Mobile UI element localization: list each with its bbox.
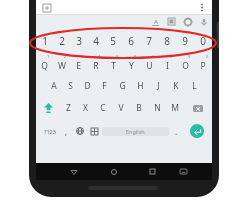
- staticText: 9: [182, 34, 188, 48]
- button[interactable]: 0: [194, 53, 212, 75]
- staticText: 3: [81, 54, 84, 59]
- button[interactable]: Stickers: [167, 17, 176, 26]
- button[interactable]: ?123: [39, 119, 60, 143]
- staticText: K: [173, 80, 179, 92]
- button[interactable]: Hide keyboard: [172, 163, 194, 180]
- staticText: J: [157, 80, 160, 92]
- button[interactable]: English: [102, 127, 169, 136]
- button[interactable]: 2: [53, 53, 70, 75]
- staticText: 2: [64, 54, 67, 59]
- staticText: ?123: [44, 128, 56, 135]
- button[interactable]: K: [167, 75, 185, 97]
- staticText: G: [119, 80, 126, 92]
- staticText: 6: [134, 54, 137, 59]
- button[interactable]: Change language: [72, 119, 87, 143]
- button[interactable]: 5: [104, 28, 122, 53]
- staticText: S: [68, 80, 73, 92]
- button[interactable]: 9: [176, 53, 194, 75]
- staticText: 4: [93, 34, 99, 48]
- button[interactable]: Enter: [190, 124, 204, 138]
- staticText: A: [51, 80, 57, 92]
- button[interactable]: M: [166, 97, 184, 119]
- staticText: X: [83, 102, 88, 114]
- button[interactable]: X: [77, 97, 94, 119]
- staticText: 6: [128, 34, 134, 48]
- button[interactable]: B: [130, 97, 148, 119]
- button[interactable]: Voice input: [199, 17, 208, 26]
- button[interactable]: 6: [122, 53, 140, 75]
- button[interactable]: Shift: [36, 97, 60, 119]
- button[interactable]: Home: [94, 163, 133, 180]
- staticText: B: [136, 102, 142, 114]
- button[interactable]: 3: [70, 53, 87, 75]
- staticText: A: [154, 18, 158, 26]
- button[interactable]: G: [113, 75, 131, 97]
- button[interactable]: N: [148, 97, 166, 119]
- button[interactable]: Translate: [151, 17, 160, 26]
- staticText: 0: [200, 34, 206, 48]
- staticText: 3: [76, 34, 82, 48]
- staticText: V: [118, 102, 124, 114]
- button[interactable]: Recents: [133, 163, 172, 180]
- button[interactable]: 8: [158, 53, 176, 75]
- button[interactable]: 0: [194, 28, 212, 53]
- staticText: Q: [41, 60, 48, 72]
- button[interactable]: Add: [41, 2, 52, 13]
- staticText: 9: [188, 54, 191, 59]
- button[interactable]: A: [45, 75, 62, 97]
- button[interactable]: J: [149, 75, 167, 97]
- staticText: 5: [110, 34, 116, 48]
- button[interactable]: More options: [196, 2, 207, 13]
- button[interactable]: Emoji: [87, 119, 102, 143]
- staticText: R: [93, 60, 99, 72]
- staticText: D: [84, 80, 91, 92]
- staticText: 2: [59, 34, 65, 48]
- staticText: Z: [66, 102, 71, 114]
- button[interactable]: 4: [87, 53, 104, 75]
- button[interactable]: V: [112, 97, 130, 119]
- staticText: ,: [65, 126, 68, 137]
- button[interactable]: 4: [87, 28, 104, 53]
- staticText: 1: [47, 54, 50, 59]
- button[interactable]: Z: [60, 97, 77, 119]
- button[interactable]: C: [94, 97, 112, 119]
- staticText: 0: [206, 54, 209, 59]
- staticText: P: [200, 60, 206, 72]
- staticText: 8: [170, 54, 173, 59]
- staticText: I: [166, 60, 169, 72]
- button[interactable]: 3: [70, 28, 87, 53]
- button[interactable]: 7: [140, 53, 158, 75]
- staticText: O: [182, 60, 189, 72]
- staticText: M: [171, 102, 179, 114]
- button[interactable]: .: [169, 119, 184, 143]
- button[interactable]: H: [131, 75, 149, 97]
- button[interactable]: 7: [140, 28, 158, 53]
- staticText: W: [58, 60, 66, 72]
- button[interactable]: 6: [122, 28, 140, 53]
- button[interactable]: ,: [60, 119, 72, 143]
- button[interactable]: F: [96, 75, 113, 97]
- button[interactable]: Back: [54, 163, 94, 180]
- staticText: English: [126, 128, 145, 135]
- staticText: Y: [129, 60, 134, 72]
- button[interactable]: 2: [53, 28, 70, 53]
- staticText: .: [175, 126, 178, 137]
- button[interactable]: 9: [176, 28, 194, 53]
- staticText: H: [137, 80, 144, 92]
- button[interactable]: Backspace: [184, 97, 212, 119]
- staticText: C: [100, 102, 106, 114]
- staticText: L: [192, 80, 197, 92]
- button[interactable]: Settings: [183, 17, 192, 26]
- button[interactable]: 1: [36, 28, 53, 53]
- button[interactable]: 1: [36, 53, 53, 75]
- staticText: 7: [146, 34, 152, 48]
- staticText: 5: [116, 54, 119, 59]
- button[interactable]: 5: [104, 53, 122, 75]
- button[interactable]: 8: [158, 28, 176, 53]
- staticText: U: [146, 60, 153, 72]
- staticText: 4: [98, 54, 101, 59]
- button[interactable]: L: [185, 75, 203, 97]
- button[interactable]: D: [79, 75, 96, 97]
- button[interactable]: S: [62, 75, 79, 97]
- staticText: 1: [42, 34, 48, 48]
